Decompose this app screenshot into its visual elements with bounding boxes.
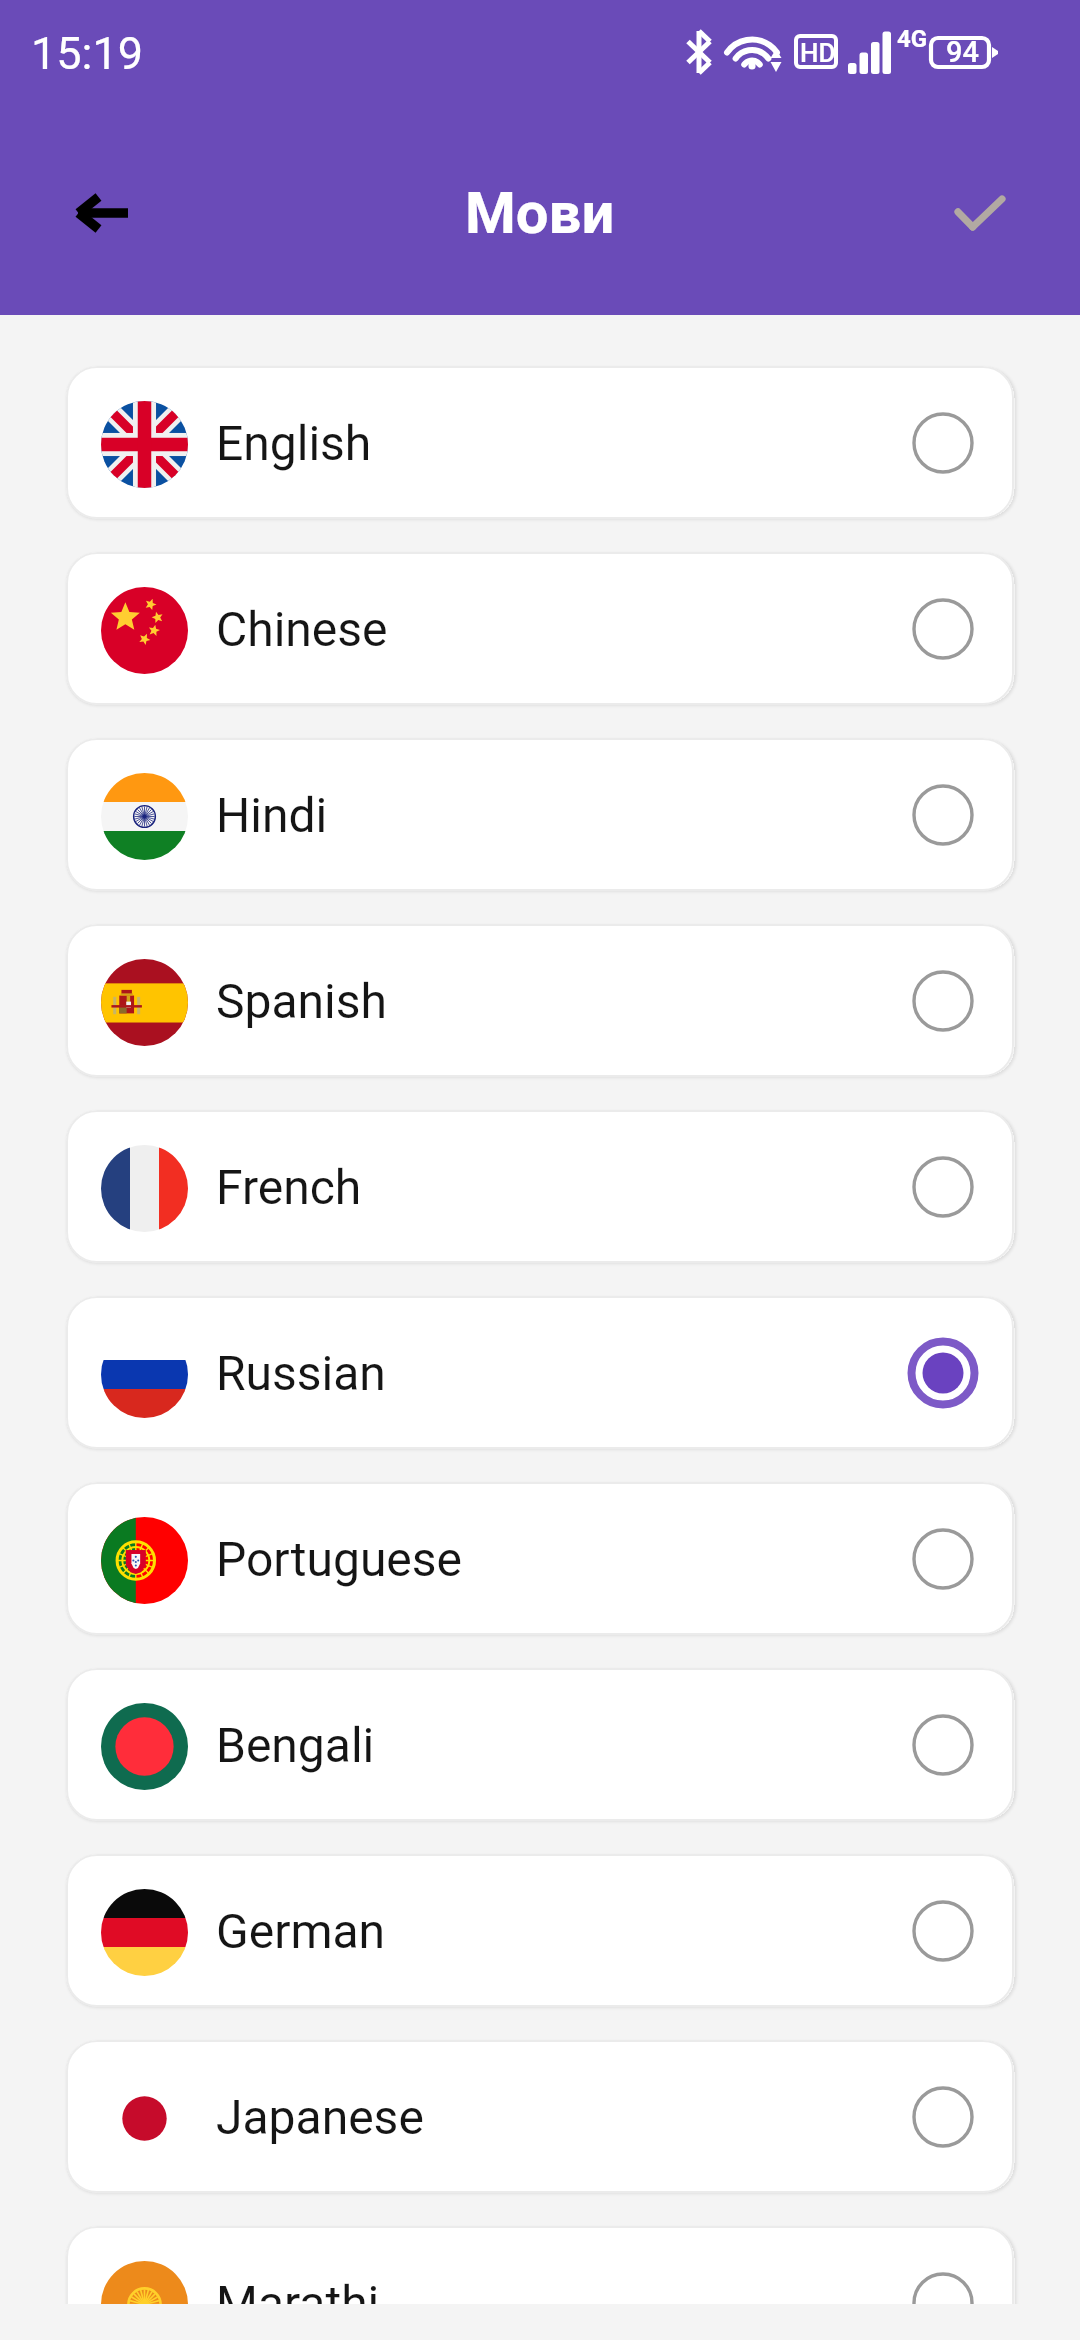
button[interactable]: Confirm bbox=[935, 168, 1025, 258]
button[interactable]: Japanese bbox=[66, 2040, 1014, 2193]
staticText: Russian bbox=[216, 1345, 386, 1401]
button[interactable]: Back bbox=[56, 168, 146, 258]
staticText: HD bbox=[800, 38, 836, 68]
staticText: Marathi bbox=[216, 2275, 380, 2304]
button[interactable]: Marathi bbox=[66, 2226, 1014, 2304]
staticText: 94 bbox=[946, 35, 979, 69]
staticText: German bbox=[216, 1903, 386, 1959]
button[interactable]: Hindi bbox=[66, 738, 1014, 891]
staticText: Bengali bbox=[216, 1717, 375, 1773]
staticText: 4G bbox=[897, 25, 928, 53]
button[interactable]: Bengali bbox=[66, 1668, 1014, 1821]
button[interactable]: English bbox=[66, 366, 1014, 519]
button[interactable]: French bbox=[66, 1110, 1014, 1263]
staticText: French bbox=[216, 1159, 362, 1215]
button[interactable]: German bbox=[66, 1854, 1014, 2007]
staticText: Chinese bbox=[216, 601, 388, 657]
staticText: 15:19 bbox=[31, 27, 144, 80]
staticText: Мови bbox=[465, 179, 615, 247]
staticText: Japanese bbox=[216, 2089, 424, 2145]
staticText: Portuguese bbox=[216, 1531, 463, 1587]
button[interactable]: Russian bbox=[66, 1296, 1014, 1449]
button[interactable]: Spanish bbox=[66, 924, 1014, 1077]
staticText: Hindi bbox=[216, 787, 328, 843]
button[interactable]: Portuguese bbox=[66, 1482, 1014, 1635]
staticText: English bbox=[216, 415, 372, 471]
button[interactable]: Chinese bbox=[66, 552, 1014, 705]
staticText: Spanish bbox=[216, 973, 387, 1029]
